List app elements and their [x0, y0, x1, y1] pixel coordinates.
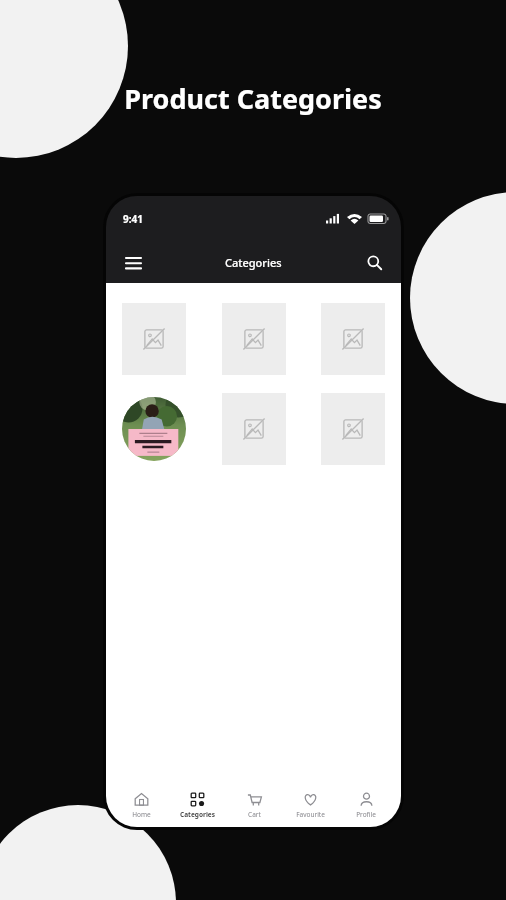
- staticText: Profile: [356, 810, 376, 819]
- button[interactable]: Category: [222, 303, 286, 375]
- button[interactable]: Category: [321, 393, 385, 465]
- staticText: Cart: [248, 810, 261, 819]
- staticText: Categories: [225, 255, 282, 270]
- button[interactable]: Home: [114, 783, 168, 827]
- staticText: Favourite: [296, 810, 325, 819]
- staticText: Product Categories: [124, 80, 382, 117]
- button[interactable]: Menu: [116, 245, 150, 279]
- button[interactable]: Profile: [339, 783, 393, 827]
- button[interactable]: Category: [321, 303, 385, 375]
- staticText: 9:41: [123, 212, 143, 226]
- staticText: Home: [132, 810, 151, 819]
- button[interactable]: Cart: [227, 783, 281, 827]
- button[interactable]: Wedding category: [122, 393, 186, 465]
- staticText: Categories: [180, 810, 215, 819]
- button[interactable]: Categories: [170, 783, 224, 827]
- button[interactable]: Favourite: [283, 783, 337, 827]
- button[interactable]: Search: [357, 245, 391, 279]
- button[interactable]: Category: [122, 303, 186, 375]
- button[interactable]: Category: [222, 393, 286, 465]
